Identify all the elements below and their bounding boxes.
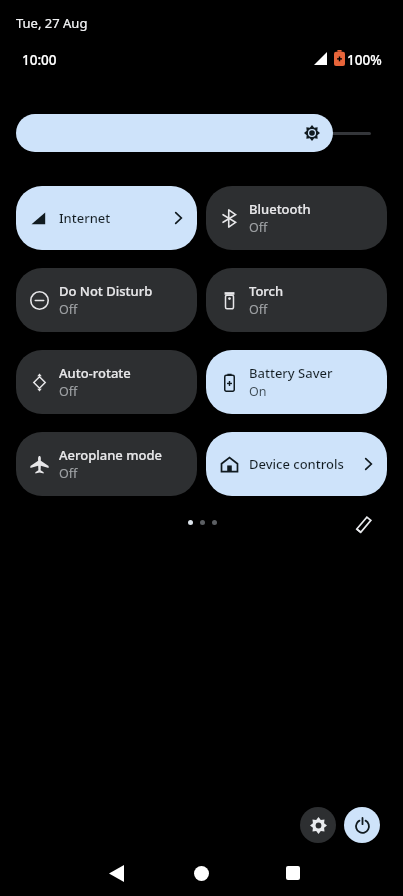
button[interactable]: Internet bbox=[16, 186, 197, 250]
button[interactable]: Recent apps bbox=[263, 850, 323, 896]
staticText: 10:00 bbox=[22, 51, 57, 69]
staticText: Off bbox=[59, 465, 78, 482]
button[interactable]: Power bbox=[344, 807, 380, 843]
button[interactable] bbox=[16, 114, 371, 152]
button[interactable]: Bluetooth bbox=[206, 186, 387, 250]
staticText: Torch bbox=[249, 282, 284, 300]
staticText: Auto-rotate bbox=[59, 364, 131, 382]
button[interactable]: Home bbox=[171, 850, 231, 896]
button[interactable]: Device controls bbox=[206, 432, 387, 496]
button[interactable]: Torch bbox=[206, 268, 387, 332]
button[interactable]: Do Not Disturb bbox=[16, 268, 197, 332]
button[interactable]: Edit tiles bbox=[348, 508, 380, 540]
staticText: Bluetooth bbox=[249, 200, 311, 218]
button[interactable]: Settings bbox=[300, 807, 336, 843]
button[interactable]: Auto-rotate bbox=[16, 350, 197, 414]
button[interactable]: Battery Saver bbox=[206, 350, 387, 414]
staticText: Do Not Disturb bbox=[59, 282, 153, 300]
staticText: Aeroplane mode bbox=[59, 446, 162, 464]
staticText: 100% bbox=[347, 51, 382, 69]
staticText: Battery Saver bbox=[249, 364, 333, 382]
staticText: Off bbox=[249, 219, 268, 236]
button[interactable]: Back bbox=[86, 850, 146, 896]
button[interactable]: Aeroplane mode bbox=[16, 432, 197, 496]
staticText: Off bbox=[249, 301, 268, 318]
staticText: Tue, 27 Aug bbox=[16, 14, 88, 32]
staticText: Device controls bbox=[249, 455, 344, 473]
staticText: Internet bbox=[59, 209, 111, 227]
staticText: Off bbox=[59, 301, 78, 318]
staticText: Off bbox=[59, 383, 78, 400]
staticText: On bbox=[249, 383, 267, 400]
